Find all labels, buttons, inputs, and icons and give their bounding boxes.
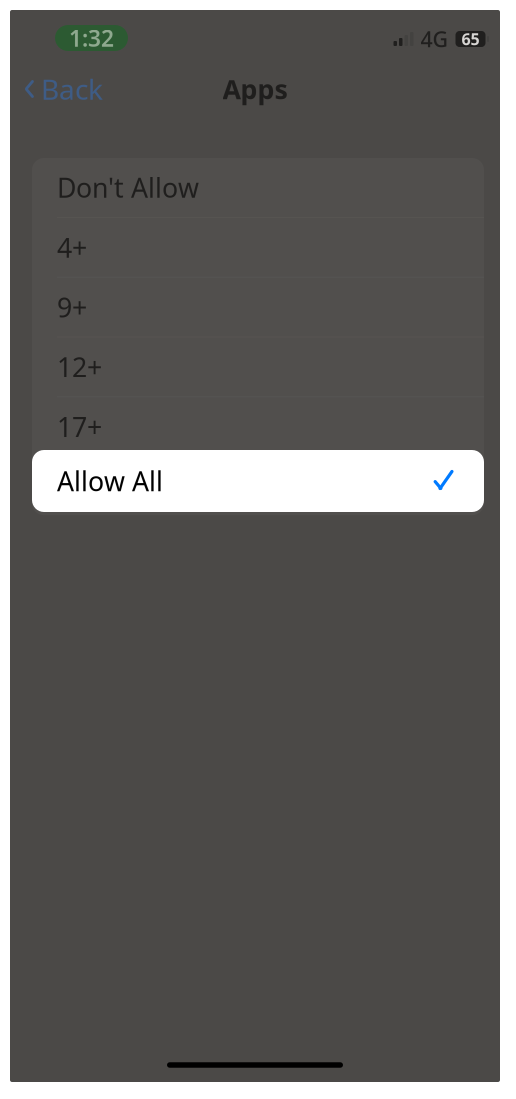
staticText: 4+ bbox=[57, 230, 87, 265]
button[interactable]: Allow All bbox=[32, 450, 484, 512]
staticText: 4G bbox=[420, 25, 448, 53]
staticText: 65 bbox=[461, 28, 479, 50]
button[interactable]: Back bbox=[10, 62, 117, 116]
button[interactable]: Don't Allow bbox=[32, 158, 484, 217]
staticText: Allow All bbox=[57, 463, 163, 499]
staticText: Back bbox=[41, 70, 103, 108]
button[interactable]: 17+ bbox=[32, 397, 484, 456]
staticText: 9+ bbox=[57, 289, 87, 325]
staticText: 17+ bbox=[57, 409, 102, 444]
button[interactable]: 9+ bbox=[32, 278, 484, 337]
staticText: Don't Allow bbox=[57, 170, 199, 205]
button[interactable] bbox=[32, 456, 484, 515]
button[interactable]: 4+ bbox=[32, 218, 484, 277]
staticText: Apps bbox=[222, 71, 287, 107]
staticText: 1:32 bbox=[69, 23, 114, 53]
staticText: 12+ bbox=[57, 349, 102, 385]
button[interactable]: 12+ bbox=[32, 337, 484, 396]
